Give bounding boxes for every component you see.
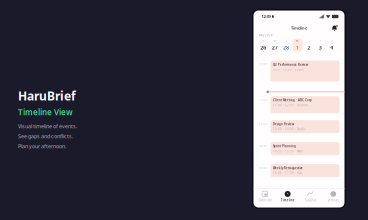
- staticText: Sprint Planning: [273, 144, 296, 148]
- staticText: 16:00 · 17:00 · Hall: [273, 171, 302, 175]
- staticText: Weekly Retrospective: [273, 166, 303, 170]
- button[interactable]: 13:00: [253, 120, 344, 133]
- staticText: Q3 Performance Review: [273, 63, 308, 66]
- button[interactable]: Settings: [322, 191, 345, 202]
- staticText: 14:30: [258, 144, 267, 148]
- staticText: T: [286, 39, 287, 42]
- button[interactable]: S: [258, 38, 268, 51]
- button[interactable]: 11:00: [253, 96, 344, 113]
- button[interactable]: Dashboard: [253, 191, 276, 202]
- staticText: 2: [307, 44, 310, 51]
- button[interactable]: T: [281, 38, 291, 51]
- staticText: May 2024: [259, 33, 273, 37]
- staticText: Timeline View: [18, 107, 73, 117]
- staticText: 9:00 · 10:30 · Zoom: [273, 68, 303, 71]
- button[interactable]: 09:00: [253, 60, 344, 81]
- staticText: S: [263, 39, 264, 42]
- staticText: 12:39: [261, 14, 270, 19]
- staticText: 11:00: [258, 98, 267, 102]
- staticText: 27: [272, 44, 278, 51]
- staticText: 28: [283, 44, 289, 51]
- staticText: 4: [330, 44, 333, 51]
- staticText: W: [296, 39, 299, 42]
- staticText: Visual timeline of events.: [18, 123, 77, 130]
- staticText: 16:00: [258, 166, 267, 170]
- button[interactable]: 16:00: [253, 164, 344, 177]
- staticText: See gaps and conflicts.: [18, 133, 73, 140]
- staticText: Dashboard: [258, 198, 272, 202]
- staticText: Plan your afternoon.: [18, 143, 66, 150]
- staticText: Client Meeting · ABC Corp: [273, 98, 312, 102]
- staticText: 26: [260, 44, 266, 51]
- button[interactable]: Notifications: [330, 24, 338, 32]
- button[interactable]: Insights: [299, 191, 322, 202]
- staticText: 09:00: [258, 62, 267, 66]
- button[interactable]: M: [269, 38, 280, 51]
- staticText: Settings: [328, 198, 339, 202]
- staticText: F: [320, 39, 321, 42]
- staticText: 14:30 · 15:30 · Main: [273, 149, 303, 153]
- staticText: 11:00 · 12:00 · Room 4: [273, 103, 308, 107]
- button[interactable]: 14:30: [253, 142, 344, 155]
- button[interactable]: T: [304, 38, 314, 51]
- staticText: HaruBrief: [18, 88, 76, 104]
- button[interactable]: F: [315, 38, 326, 51]
- staticText: Timeline: [281, 198, 295, 202]
- staticText: Insights: [305, 198, 316, 202]
- button[interactable]: S: [326, 38, 337, 51]
- button[interactable]: W: [292, 38, 303, 51]
- staticText: Timeline: [291, 25, 307, 31]
- staticText: 13:00: [258, 122, 267, 126]
- staticText: S: [331, 39, 332, 42]
- staticText: Design Review: [273, 122, 294, 126]
- staticText: 3: [319, 44, 322, 51]
- staticText: 13:00 · 14:00 · Studio: [273, 127, 306, 131]
- button[interactable]: Timeline: [276, 191, 299, 202]
- staticText: M: [274, 39, 276, 42]
- staticText: 1: [296, 44, 299, 51]
